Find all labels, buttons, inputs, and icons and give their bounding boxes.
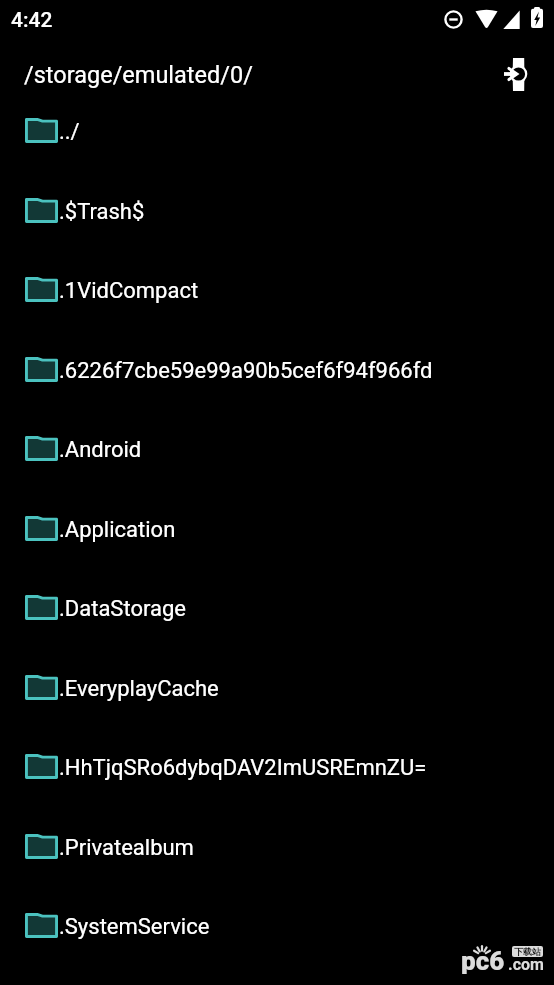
staticText: 4:42 — [11, 8, 53, 33]
staticText: .1VidCompact — [59, 278, 199, 304]
staticText: .EveryplayCache — [59, 676, 219, 702]
button[interactable]: .Privatealbum — [0, 826, 554, 906]
button[interactable]: .6226f7cbe59e99a90b5cef6f94f966fd — [0, 349, 554, 429]
staticText: .Android — [59, 437, 142, 463]
staticText: .HhTjqSRo6dybqDAV2ImUSREmnZU= — [59, 755, 427, 781]
staticText: .Privatealbum — [59, 835, 194, 861]
staticText: .Application — [59, 517, 176, 543]
staticText: /storage/emulated/0/ — [24, 61, 253, 89]
staticText: .com — [508, 955, 544, 974]
button[interactable]: .SystemService — [0, 905, 554, 985]
staticText: 下载站 — [514, 946, 541, 957]
button[interactable]: ../ — [0, 110, 554, 190]
button[interactable]: .1VidCompact — [0, 269, 554, 349]
button[interactable]: .HhTjqSRo6dybqDAV2ImUSREmnZU= — [0, 746, 554, 826]
button[interactable]: .Android — [0, 428, 554, 508]
button[interactable]: .$Trash$ — [0, 190, 554, 270]
staticText: pc6 — [461, 946, 505, 974]
staticText: .DataStorage — [59, 596, 186, 622]
button[interactable]: .Application — [0, 508, 554, 588]
button[interactable]: .EveryplayCache — [0, 667, 554, 747]
staticText: .$Trash$ — [59, 199, 145, 225]
button[interactable]: Send to watch — [496, 54, 536, 94]
staticText: ../ — [59, 119, 80, 145]
staticText: .6226f7cbe59e99a90b5cef6f94f966fd — [59, 358, 433, 384]
staticText: .SystemService — [59, 914, 210, 940]
button[interactable]: .DataStorage — [0, 587, 554, 667]
